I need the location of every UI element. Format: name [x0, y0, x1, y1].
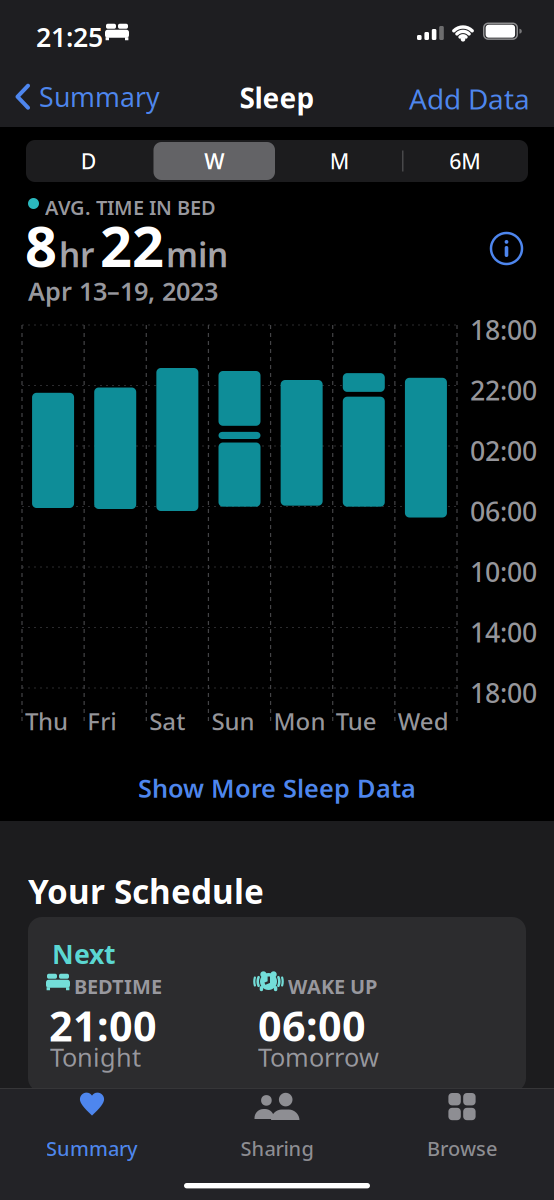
staticText: Tonight [50, 1040, 141, 1074]
staticText: Sat [149, 705, 185, 737]
staticText: 22 [100, 208, 164, 282]
button[interactable]: Add Data [409, 80, 530, 117]
staticText: Tue [336, 705, 377, 737]
staticText: min [166, 232, 228, 276]
staticText: 6M [449, 147, 481, 175]
button[interactable]: Summary [17, 1092, 167, 1158]
staticText: 8 [25, 208, 57, 282]
staticText: Fri [87, 705, 116, 737]
staticText: AVG. TIME IN BED [45, 194, 216, 221]
staticText: 06:00 [470, 493, 537, 529]
button[interactable]: Summary [15, 79, 160, 114]
staticText: Sharing [240, 1135, 313, 1162]
staticText: 06:00 [258, 998, 366, 1053]
button[interactable]: Browse [387, 1092, 537, 1158]
button[interactable]: W [151, 140, 277, 182]
button[interactable]: About Time in Bed [491, 233, 522, 264]
staticText: 18:00 [470, 675, 537, 710]
staticText: 21:25 [36, 19, 103, 54]
button[interactable]: Show More Sleep Data [0, 771, 554, 805]
staticText: Tomorrow [258, 1040, 379, 1074]
staticText: Sleep [239, 79, 314, 116]
staticText: Apr 13–19, 2023 [28, 274, 218, 308]
staticText: Browse [427, 1135, 497, 1162]
button[interactable]: 6M [402, 140, 528, 182]
staticText: Summary [39, 79, 160, 114]
staticText: WAKE UP [288, 973, 377, 1000]
staticText: Thu [25, 705, 68, 737]
staticText: Sun [211, 705, 254, 737]
staticText: M [330, 147, 350, 175]
button[interactable]: Sharing [202, 1092, 352, 1158]
staticText: BEDTIME [74, 973, 162, 1000]
staticText: 02:00 [470, 433, 537, 468]
staticText: Show More Sleep Data [138, 771, 416, 805]
button[interactable]: M [277, 140, 402, 182]
staticText: 10:00 [470, 554, 537, 589]
staticText: Your Schedule [28, 869, 264, 913]
staticText: 14:00 [470, 614, 537, 650]
staticText: D [81, 147, 97, 175]
staticText: Add Data [409, 80, 530, 117]
button[interactable]: D [26, 140, 151, 182]
staticText: Next [52, 936, 116, 971]
staticText: W [204, 147, 224, 175]
staticText: Mon [274, 705, 326, 737]
staticText: 22:00 [470, 372, 537, 408]
staticText: hr [59, 232, 94, 276]
staticText: 21:00 [49, 998, 157, 1053]
staticText: Wed [398, 705, 449, 737]
staticText: Summary [46, 1135, 138, 1162]
staticText: 18:00 [470, 312, 537, 347]
